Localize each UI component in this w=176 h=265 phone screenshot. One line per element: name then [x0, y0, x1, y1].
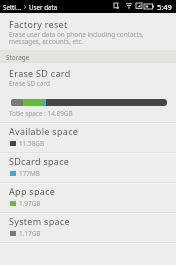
button[interactable]: SDcard space	[0, 153, 176, 183]
staticText: Available space	[9, 125, 79, 137]
button[interactable]: System space	[0, 213, 176, 243]
button[interactable]: Erase SD card	[0, 63, 176, 89]
staticText: SDcard space	[9, 155, 70, 167]
staticText: 5:49	[157, 2, 172, 12]
staticText: Setti...	[3, 3, 21, 11]
staticText: System space	[9, 215, 70, 227]
staticText: Factory reset	[9, 18, 68, 30]
staticText: User data	[29, 3, 58, 11]
staticText: 177MB	[19, 169, 40, 178]
staticText: 11.58GB	[19, 139, 45, 148]
button[interactable]: Available space	[0, 123, 176, 153]
other: Wi-Fi	[126, 3, 132, 9]
other: Battery	[144, 4, 154, 9]
staticText: Erase SD card	[9, 67, 71, 79]
other: SD card	[114, 3, 119, 9]
staticText: App space	[9, 185, 56, 197]
staticText: Totle space : 14.89GB	[9, 109, 73, 118]
staticText: Erase user data on phone including conta…	[9, 30, 144, 39]
button[interactable]: Factory reset	[0, 13, 176, 50]
staticText: Erase SD card	[9, 79, 50, 88]
staticText: Storage	[6, 53, 30, 62]
staticText: messages, accounts, etc.	[9, 37, 84, 46]
button[interactable]: App space	[0, 183, 176, 213]
staticText: 1.17GB	[19, 229, 41, 238]
other: Signal	[136, 3, 142, 9]
staticText: 1.97GB	[19, 199, 41, 208]
